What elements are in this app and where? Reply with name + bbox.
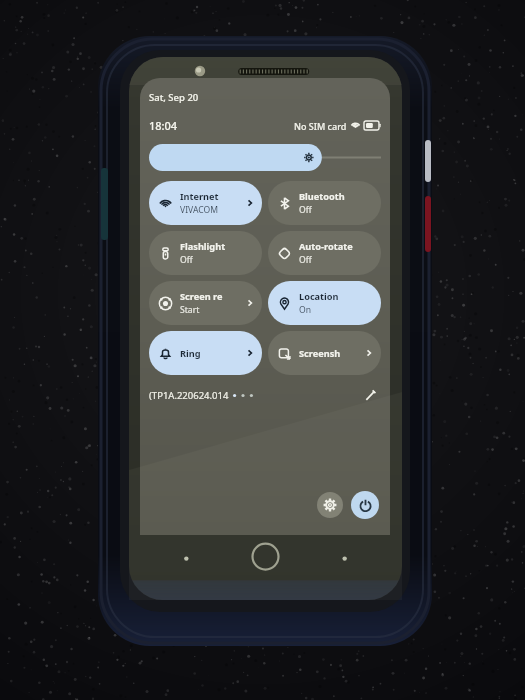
staticText: Bluetooth xyxy=(299,190,345,203)
button[interactable] xyxy=(149,144,381,171)
staticText: (TP1A.220624.014 xyxy=(149,389,229,402)
button[interactable]: Flashlight xyxy=(149,231,262,275)
staticText: Ring xyxy=(180,347,201,360)
button[interactable]: Screen re xyxy=(149,281,262,325)
staticText: No SIM card xyxy=(294,120,347,132)
button[interactable]: Ring xyxy=(149,331,262,375)
staticText: Off xyxy=(299,204,312,216)
staticText: Sat, Sep 20 xyxy=(149,91,199,104)
button[interactable]: Bluetooth xyxy=(268,181,381,225)
button[interactable]: Screensh xyxy=(268,331,381,375)
staticText: Screen re xyxy=(180,290,223,303)
staticText: Start xyxy=(180,304,200,316)
button[interactable]: Auto-rotate xyxy=(268,231,381,275)
button[interactable]: Power xyxy=(351,491,379,519)
button[interactable]: Edit tiles xyxy=(359,384,381,406)
button[interactable]: Location xyxy=(268,281,381,325)
staticText: On xyxy=(299,304,312,316)
staticText: Location xyxy=(299,290,339,303)
staticText: Off xyxy=(299,254,312,266)
staticText: 18:04 xyxy=(149,118,178,133)
staticText: Flashlight xyxy=(180,240,226,253)
button[interactable]: Internet xyxy=(149,181,262,225)
staticText: VIVACOM xyxy=(180,204,218,216)
staticText: Off xyxy=(180,254,193,266)
staticText: Screensh xyxy=(299,347,341,360)
button[interactable]: Settings xyxy=(317,492,343,518)
staticText: Auto-rotate xyxy=(299,240,353,253)
staticText: Internet xyxy=(180,190,219,203)
